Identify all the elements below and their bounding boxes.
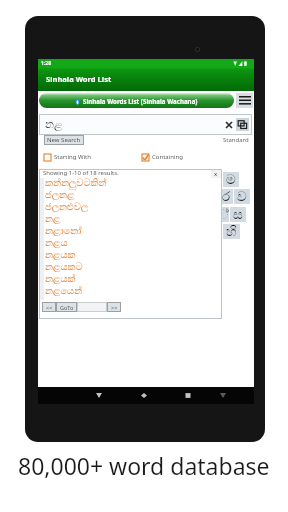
button[interactable]: ර bbox=[220, 189, 233, 204]
button[interactable]: Home bbox=[135, 387, 152, 404]
staticText: නළ bbox=[45, 214, 61, 224]
button[interactable]: නළය bbox=[39, 237, 222, 249]
button[interactable]: නළ bbox=[39, 213, 222, 225]
button[interactable]: Menu bbox=[236, 93, 253, 108]
staticText: ම bbox=[226, 173, 236, 187]
staticText: 1:28 bbox=[41, 60, 51, 67]
staticText: නළයකට bbox=[45, 262, 83, 272]
staticText: << bbox=[46, 304, 53, 311]
staticText: >> bbox=[111, 304, 118, 311]
button[interactable]: >> bbox=[107, 302, 121, 312]
button[interactable]: ස bbox=[230, 207, 246, 222]
button[interactable]: නළයක් bbox=[39, 273, 222, 285]
button[interactable]: Containing bbox=[142, 153, 183, 161]
button[interactable]: නළානෝ bbox=[39, 225, 222, 237]
button[interactable]: ම bbox=[223, 172, 239, 187]
button[interactable]: Starting With bbox=[44, 153, 91, 161]
button[interactable]: Close results bbox=[211, 169, 221, 178]
button[interactable]: ව bbox=[234, 189, 250, 204]
staticText: Standard bbox=[223, 136, 249, 144]
staticText: ජලනළුවල bbox=[45, 202, 89, 212]
button[interactable]: Open keyboard bbox=[236, 118, 249, 131]
staticText: Sinhala Word List bbox=[46, 74, 112, 84]
staticText: New Search bbox=[47, 136, 81, 144]
button[interactable]: << bbox=[42, 302, 56, 312]
button[interactable]: Back bbox=[90, 387, 107, 404]
staticText: නළය bbox=[45, 238, 68, 248]
staticText: Showing 1-10 of 18 results. bbox=[43, 169, 119, 177]
button[interactable]: කන්නලුවටකින් bbox=[39, 177, 222, 189]
button[interactable]: Sinhala Words List (Sinhala Wachana) bbox=[39, 93, 234, 108]
staticText: නළයක් bbox=[45, 274, 76, 284]
button[interactable]: නළයකට bbox=[39, 261, 222, 273]
staticText: ස bbox=[233, 208, 243, 222]
staticText: හි bbox=[226, 225, 237, 239]
button[interactable]: ් bbox=[217, 207, 229, 222]
staticText: නළ bbox=[45, 119, 63, 130]
staticText: ර bbox=[222, 190, 231, 204]
button[interactable]: Recents bbox=[179, 387, 196, 404]
button[interactable]: ජලනළුවල bbox=[39, 201, 222, 213]
staticText: නළානෝ bbox=[45, 226, 82, 236]
staticText: GoTo bbox=[60, 304, 74, 311]
staticText: Containing bbox=[152, 153, 183, 161]
button[interactable]: නළයෙන් bbox=[39, 285, 222, 297]
button[interactable]: නළයක bbox=[39, 249, 222, 261]
button[interactable]: GoTo bbox=[56, 302, 77, 312]
staticText: ් bbox=[218, 208, 229, 222]
staticText: 80,000+ word database bbox=[18, 450, 270, 481]
button[interactable]: Hide keyboard bbox=[214, 387, 231, 404]
button[interactable]: ජලනළ bbox=[39, 189, 222, 201]
staticText: ජලනළ bbox=[45, 190, 75, 200]
staticText: ව bbox=[237, 190, 247, 204]
staticText: නළයෙන් bbox=[45, 286, 83, 296]
staticText: Sinhala Words List (Sinhala Wachana) bbox=[83, 97, 198, 105]
button[interactable]: Clear text bbox=[222, 118, 235, 131]
staticText: නළයක bbox=[45, 250, 76, 260]
button[interactable]: හි bbox=[223, 224, 240, 239]
staticText: කන්නලුවටකින් bbox=[45, 178, 107, 188]
staticText: x bbox=[214, 170, 218, 178]
staticText: Starting With bbox=[54, 153, 91, 161]
button[interactable]: New Search bbox=[47, 135, 81, 145]
